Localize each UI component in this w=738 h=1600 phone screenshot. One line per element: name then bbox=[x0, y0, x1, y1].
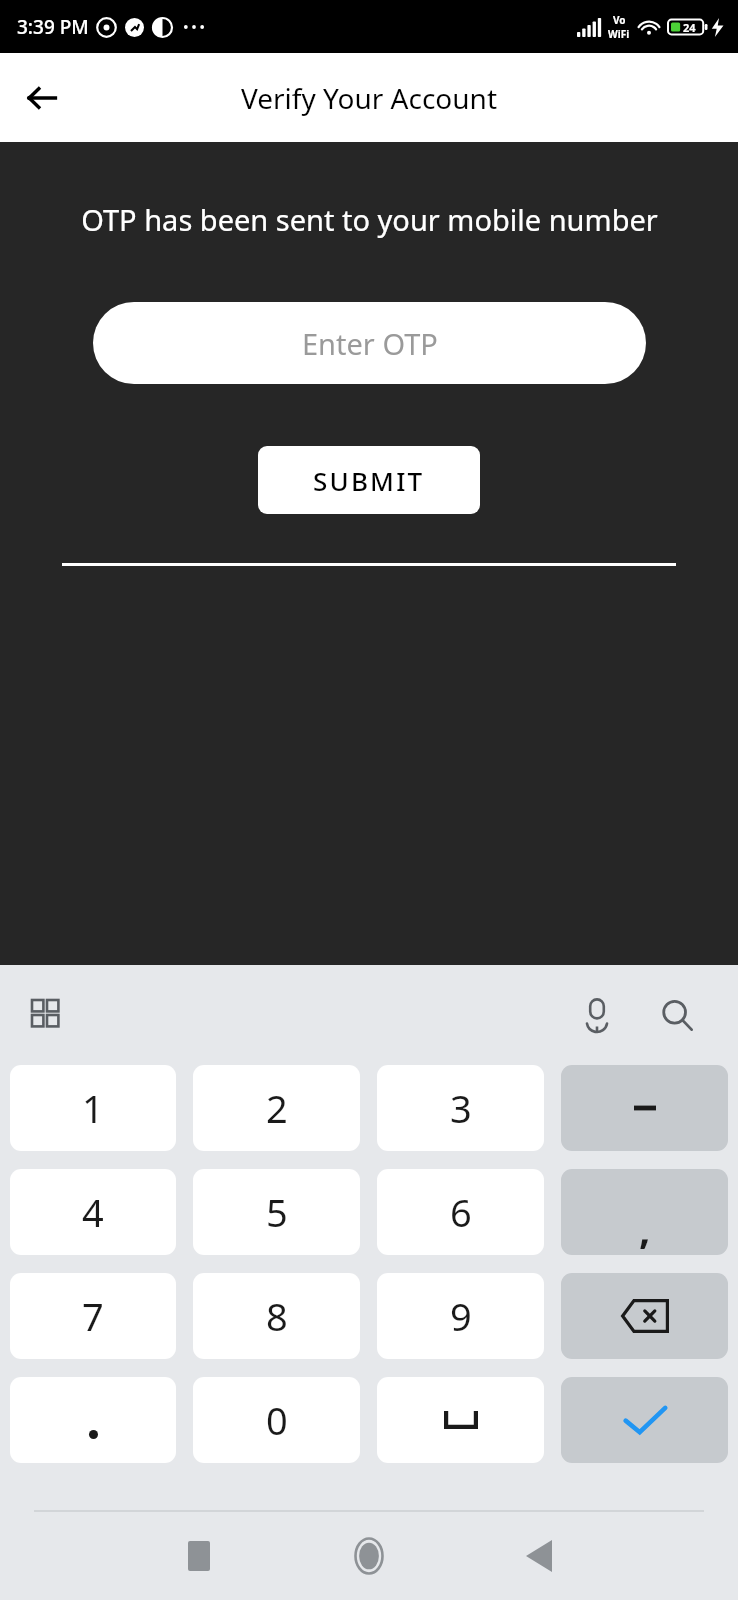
button[interactable]: Recents bbox=[114, 1521, 284, 1591]
button[interactable] bbox=[561, 1065, 728, 1151]
staticText: WiFi bbox=[608, 27, 630, 41]
staticText: 3:39 PM bbox=[17, 14, 89, 40]
button[interactable]: 1 bbox=[10, 1065, 176, 1151]
staticText: 2 bbox=[266, 1082, 288, 1134]
staticText: 4 bbox=[82, 1186, 104, 1238]
button[interactable]: 7 bbox=[10, 1273, 176, 1359]
button[interactable]: Search bbox=[646, 984, 708, 1046]
staticText: 0 bbox=[266, 1394, 288, 1446]
staticText: 8 bbox=[266, 1290, 288, 1342]
button[interactable]: 2 bbox=[193, 1065, 360, 1151]
button[interactable]: 5 bbox=[193, 1169, 360, 1255]
staticText: 24 bbox=[683, 20, 696, 35]
staticText: SUBMIT bbox=[313, 463, 425, 498]
button[interactable]: Backspace bbox=[561, 1273, 728, 1359]
button[interactable]: Back bbox=[14, 70, 70, 126]
staticText: 7 bbox=[82, 1290, 104, 1342]
button[interactable]: Keyboard layouts bbox=[18, 986, 76, 1044]
staticText: Enter OTP bbox=[302, 324, 438, 363]
button[interactable]: Enter bbox=[561, 1377, 728, 1463]
button[interactable]: 0 bbox=[193, 1377, 360, 1463]
staticText: 5 bbox=[266, 1186, 288, 1238]
staticText: , bbox=[639, 1201, 651, 1255]
button[interactable]: SUBMIT bbox=[258, 446, 480, 514]
button[interactable]: 4 bbox=[10, 1169, 176, 1255]
staticText: 6 bbox=[450, 1186, 472, 1238]
button[interactable]: Space bbox=[377, 1377, 544, 1463]
button[interactable]: 8 bbox=[193, 1273, 360, 1359]
button[interactable]: Enter OTP bbox=[93, 302, 646, 384]
button[interactable]: 6 bbox=[377, 1169, 544, 1255]
staticText: 1 bbox=[82, 1082, 104, 1134]
button[interactable] bbox=[10, 1377, 176, 1463]
button[interactable]: Home bbox=[284, 1521, 454, 1591]
staticText: OTP has been sent to your mobile number bbox=[81, 200, 658, 239]
button[interactable]: Voice input bbox=[566, 984, 628, 1046]
button[interactable]: Back bbox=[454, 1521, 624, 1591]
button[interactable]: 3 bbox=[377, 1065, 544, 1151]
staticText: 9 bbox=[450, 1290, 472, 1342]
staticText: Verify Your Account bbox=[241, 79, 497, 117]
staticText: 3 bbox=[450, 1082, 472, 1134]
button[interactable]: 9 bbox=[377, 1273, 544, 1359]
staticText: Vo bbox=[613, 13, 626, 27]
button[interactable]: , bbox=[561, 1169, 728, 1255]
